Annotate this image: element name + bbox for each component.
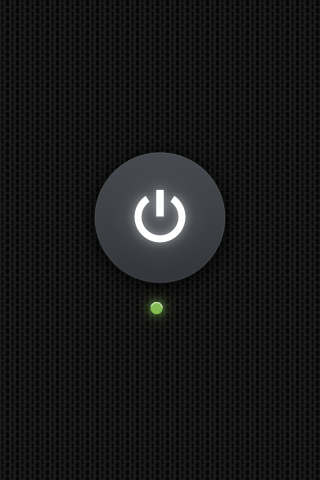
- button[interactable]: Power: [95, 153, 225, 283]
